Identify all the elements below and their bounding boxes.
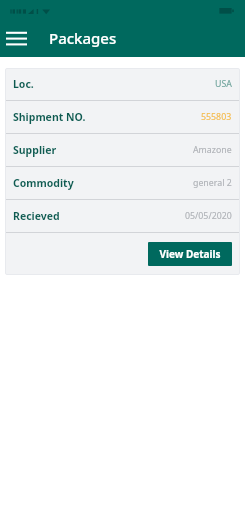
button[interactable]: Recieved [5, 200, 240, 232]
staticText: Amazone [193, 144, 232, 156]
staticText: View Details [159, 247, 221, 261]
button[interactable]: Commodity [5, 167, 240, 199]
staticText: Shipment NO. [13, 110, 86, 124]
staticText: Packages [49, 28, 117, 48]
button[interactable]: View Details [148, 242, 232, 266]
staticText: Loc. [13, 77, 34, 91]
staticText: Supplier [13, 143, 57, 157]
staticText: general 2 [193, 177, 232, 189]
staticText: Recieved [13, 209, 60, 223]
staticText: USA [215, 78, 232, 90]
staticText: 555803 [201, 111, 232, 123]
button[interactable]: Supplier [5, 134, 240, 166]
button[interactable]: Loc. [5, 68, 240, 100]
staticText: Commodity [13, 176, 74, 190]
button[interactable]: Open navigation menu [6, 25, 27, 51]
button[interactable]: Shipment NO. [5, 101, 240, 133]
staticText: 05/05/2020 [185, 210, 232, 222]
